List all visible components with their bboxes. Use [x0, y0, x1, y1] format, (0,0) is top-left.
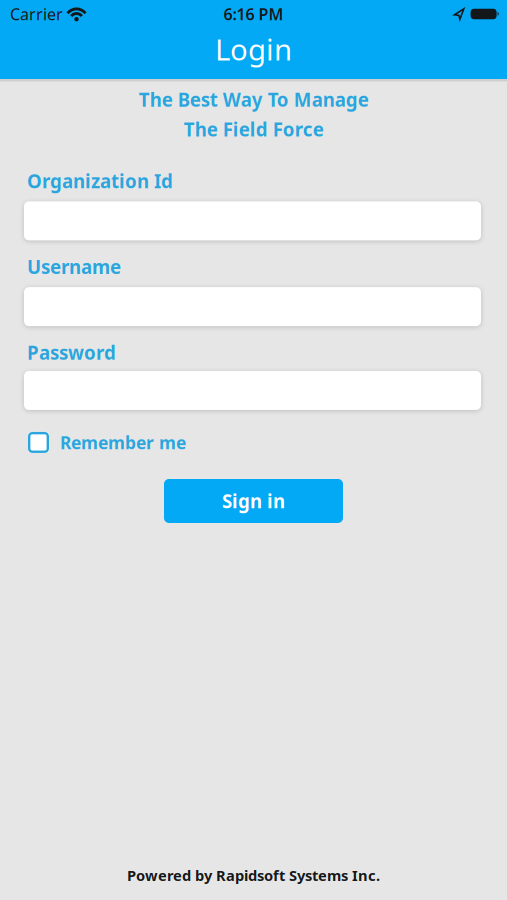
staticText: Organization Id: [27, 169, 173, 193]
staticText: Remember me: [60, 431, 186, 454]
staticText: Sign in: [222, 489, 285, 513]
staticText: 6:16 PM: [223, 3, 283, 25]
staticText: Login: [215, 29, 292, 68]
button[interactable]: Sign in: [164, 479, 343, 523]
staticText: Password: [27, 340, 116, 365]
staticText: Powered by Rapidsoft Systems Inc.: [127, 865, 380, 885]
staticText: Carrier: [10, 3, 63, 25]
staticText: The Best Way To Manage The Field Force: [138, 87, 368, 142]
staticText: Username: [27, 254, 121, 279]
button[interactable]: Remember me: [28, 432, 49, 453]
